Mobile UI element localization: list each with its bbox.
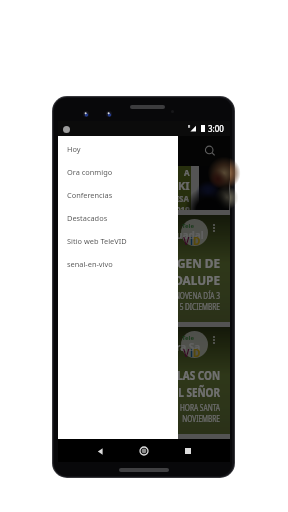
staticText: 3:00 <box>208 123 224 134</box>
staticText: KI <box>178 178 190 193</box>
button[interactable]: senal-en-vivo <box>58 252 178 275</box>
staticText: ISA <box>176 193 190 204</box>
button[interactable]: Recents <box>179 442 197 460</box>
staticText: A <box>184 167 190 178</box>
staticText: Tele <box>182 334 194 342</box>
staticText: Tele <box>182 222 194 230</box>
staticText: V <box>183 346 190 360</box>
staticText: D <box>193 346 201 360</box>
staticText: V <box>183 234 190 248</box>
staticText: VIRGEN DE <box>156 254 220 271</box>
staticText: 5 DICIEMBRE <box>179 301 220 312</box>
button[interactable]: Back <box>91 442 109 460</box>
staticText: GUADALUPE <box>148 271 220 288</box>
staticText: i <box>190 234 193 248</box>
staticText: VELAS CON <box>165 366 220 383</box>
staticText: 019 <box>176 204 190 210</box>
staticText: Ora conmigo <box>67 167 113 177</box>
staticText: ra Sa <box>176 340 201 354</box>
button[interactable] <box>199 166 229 210</box>
staticText: Conferencias <box>67 190 113 200</box>
button[interactable]: Sitio web TeleVID <box>58 229 178 252</box>
staticText: uadal <box>176 228 204 242</box>
button[interactable]: More options <box>205 331 223 349</box>
staticText: i <box>190 346 193 360</box>
button[interactable]: Conferencias <box>58 183 178 206</box>
button[interactable]: Tele <box>58 327 230 434</box>
button[interactable]: Tele <box>58 215 230 322</box>
staticText: D <box>193 234 201 248</box>
staticText: EL SEÑOR <box>172 383 220 400</box>
staticText: NOVIEMBRE <box>182 413 220 424</box>
button[interactable]: Destacados <box>58 206 178 229</box>
button[interactable]: More options <box>205 219 223 237</box>
button[interactable]: Search <box>200 141 220 161</box>
button[interactable]: Home <box>135 442 153 460</box>
staticText: senal-en-vivo <box>67 259 113 269</box>
staticText: Sitio web TeleVID <box>67 236 127 246</box>
button[interactable]: Ora conmigo <box>58 160 178 183</box>
button[interactable]: Hoy <box>58 137 178 160</box>
staticText: HORA SANTA <box>179 402 220 413</box>
button[interactable]: A <box>162 166 191 210</box>
staticText: NOVENA DÍA 3 <box>174 290 220 301</box>
staticText: Destacados <box>67 213 108 223</box>
staticText: Hoy <box>67 144 81 154</box>
